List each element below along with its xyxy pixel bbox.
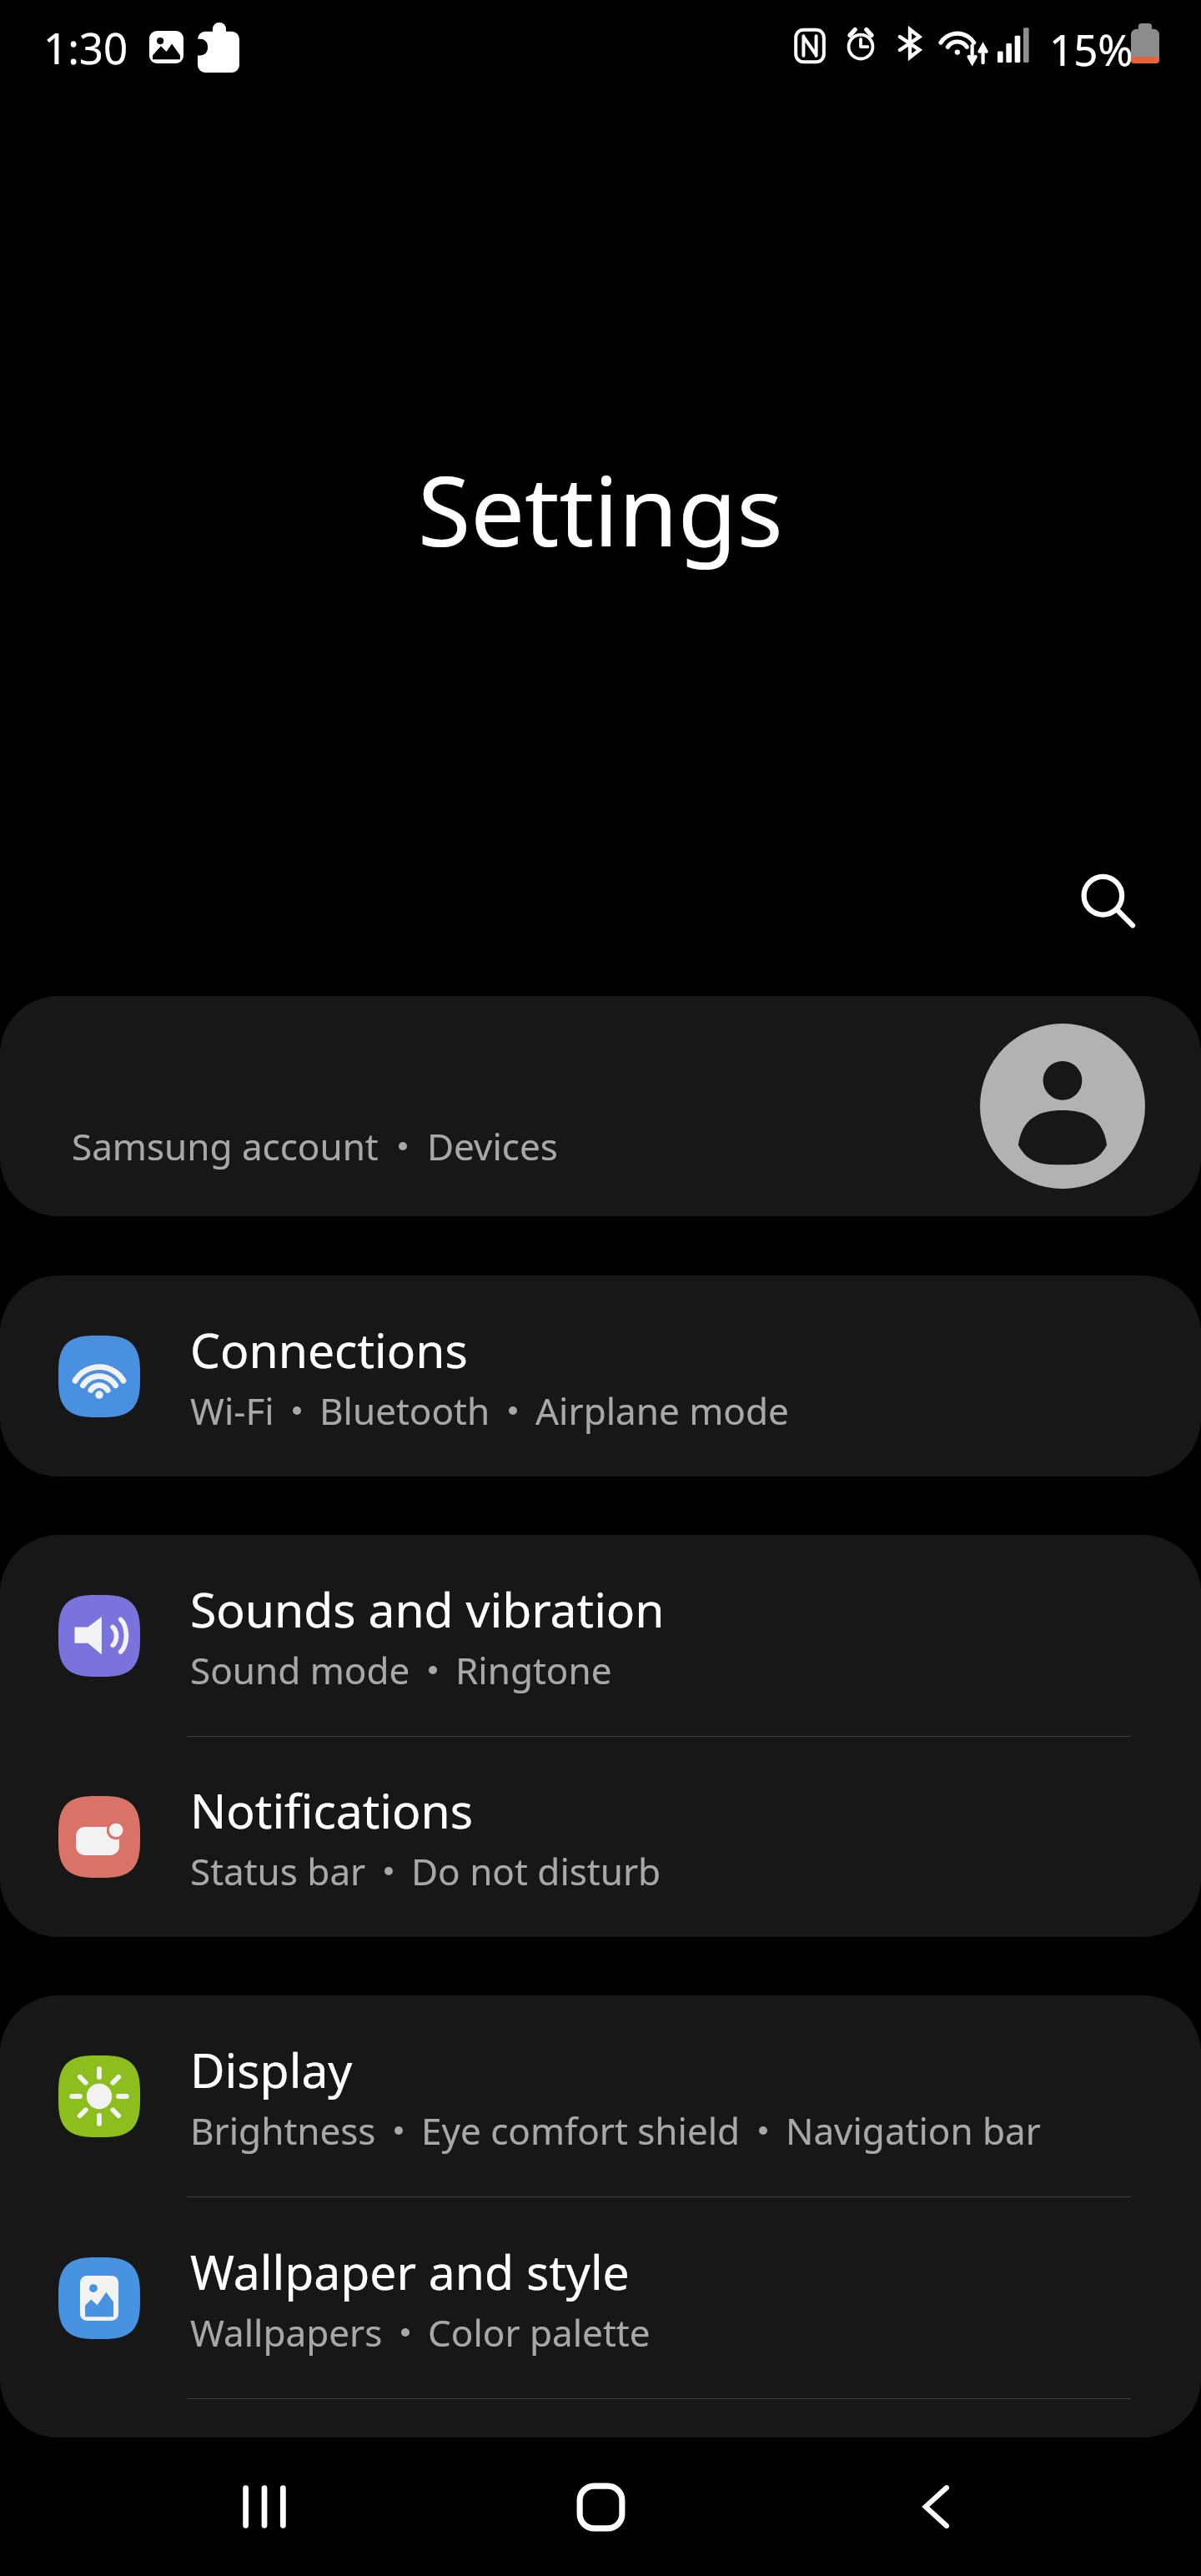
staticText: Display	[190, 2037, 353, 2102]
staticText: Sounds and vibration	[190, 1577, 665, 1642]
button[interactable]: Display	[0, 1995, 1201, 2196]
staticText: Wi-Fi	[190, 1386, 274, 1436]
staticText: Airplane mode	[535, 1386, 789, 1436]
staticText: Status bar	[190, 1846, 366, 1896]
staticText: Bluetooth	[319, 1386, 490, 1436]
staticText: 15%	[1049, 20, 1133, 78]
staticText: Wallpaper and style	[190, 2239, 630, 2304]
staticText: Devices	[427, 1121, 558, 1171]
button[interactable]: Back	[873, 2444, 998, 2569]
button[interactable]: Recents	[202, 2444, 327, 2569]
button[interactable]: Samsung account	[0, 996, 1201, 1216]
staticText: Settings	[418, 444, 783, 575]
staticText: Wallpapers	[190, 2307, 383, 2357]
button[interactable]: Sounds and vibration	[0, 1535, 1201, 1736]
staticText: Samsung account	[72, 1121, 379, 1171]
button[interactable]: Home	[538, 2444, 663, 2569]
button[interactable]: Notifications	[0, 1737, 1201, 1937]
staticText: 1:30	[43, 18, 128, 76]
staticText: Navigation bar	[786, 2106, 1041, 2156]
staticText: Eye comfort shield	[421, 2106, 741, 2156]
button[interactable]: Connections	[0, 1275, 1201, 1477]
staticText: Connections	[190, 1317, 468, 1382]
staticText: Sound mode	[190, 1645, 410, 1695]
staticText: Notifications	[190, 1778, 474, 1843]
staticText: Do not disturb	[411, 1846, 661, 1896]
staticText: Ringtone	[455, 1645, 612, 1695]
button[interactable]: Wallpaper and style	[0, 2197, 1201, 2398]
staticText: Brightness	[190, 2106, 376, 2156]
button[interactable]: Search	[1050, 843, 1167, 960]
staticText: Color palette	[428, 2307, 651, 2357]
